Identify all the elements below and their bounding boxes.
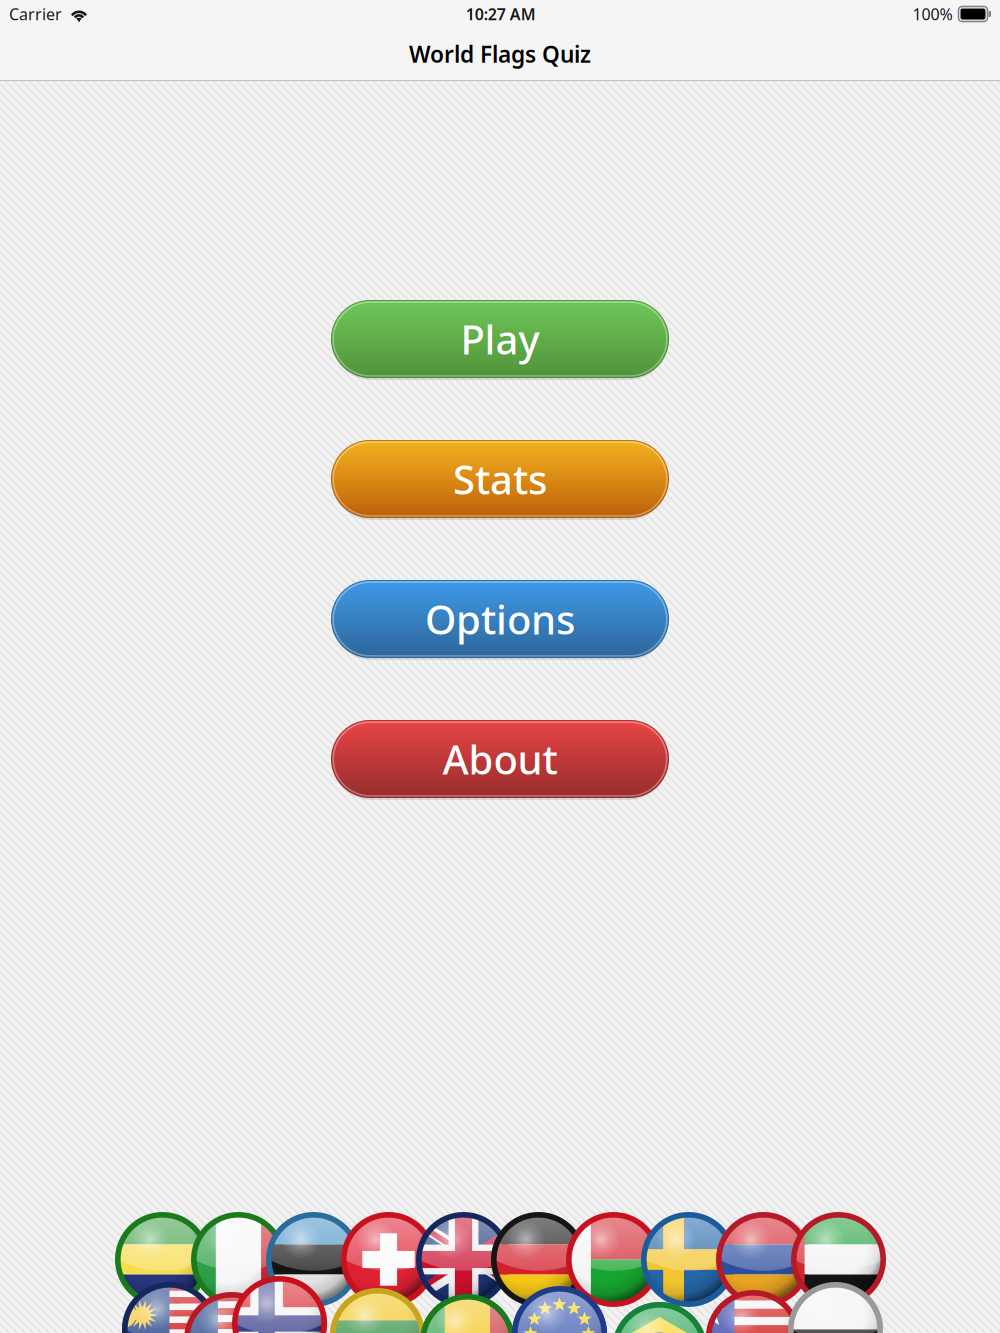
staticText: Stats (453, 452, 547, 505)
staticText: Play (460, 312, 539, 365)
button[interactable]: Play (331, 300, 669, 378)
button[interactable]: Options (331, 580, 669, 658)
staticText: 100% (912, 3, 952, 25)
staticText: World Flags Quiz (409, 39, 591, 69)
button[interactable]: Stats (331, 440, 669, 518)
staticText: Options (425, 592, 575, 645)
button[interactable]: About (331, 720, 669, 798)
staticText: Carrier (9, 3, 62, 25)
staticText: About (442, 732, 557, 785)
staticText: 10:27 AM (466, 3, 536, 25)
